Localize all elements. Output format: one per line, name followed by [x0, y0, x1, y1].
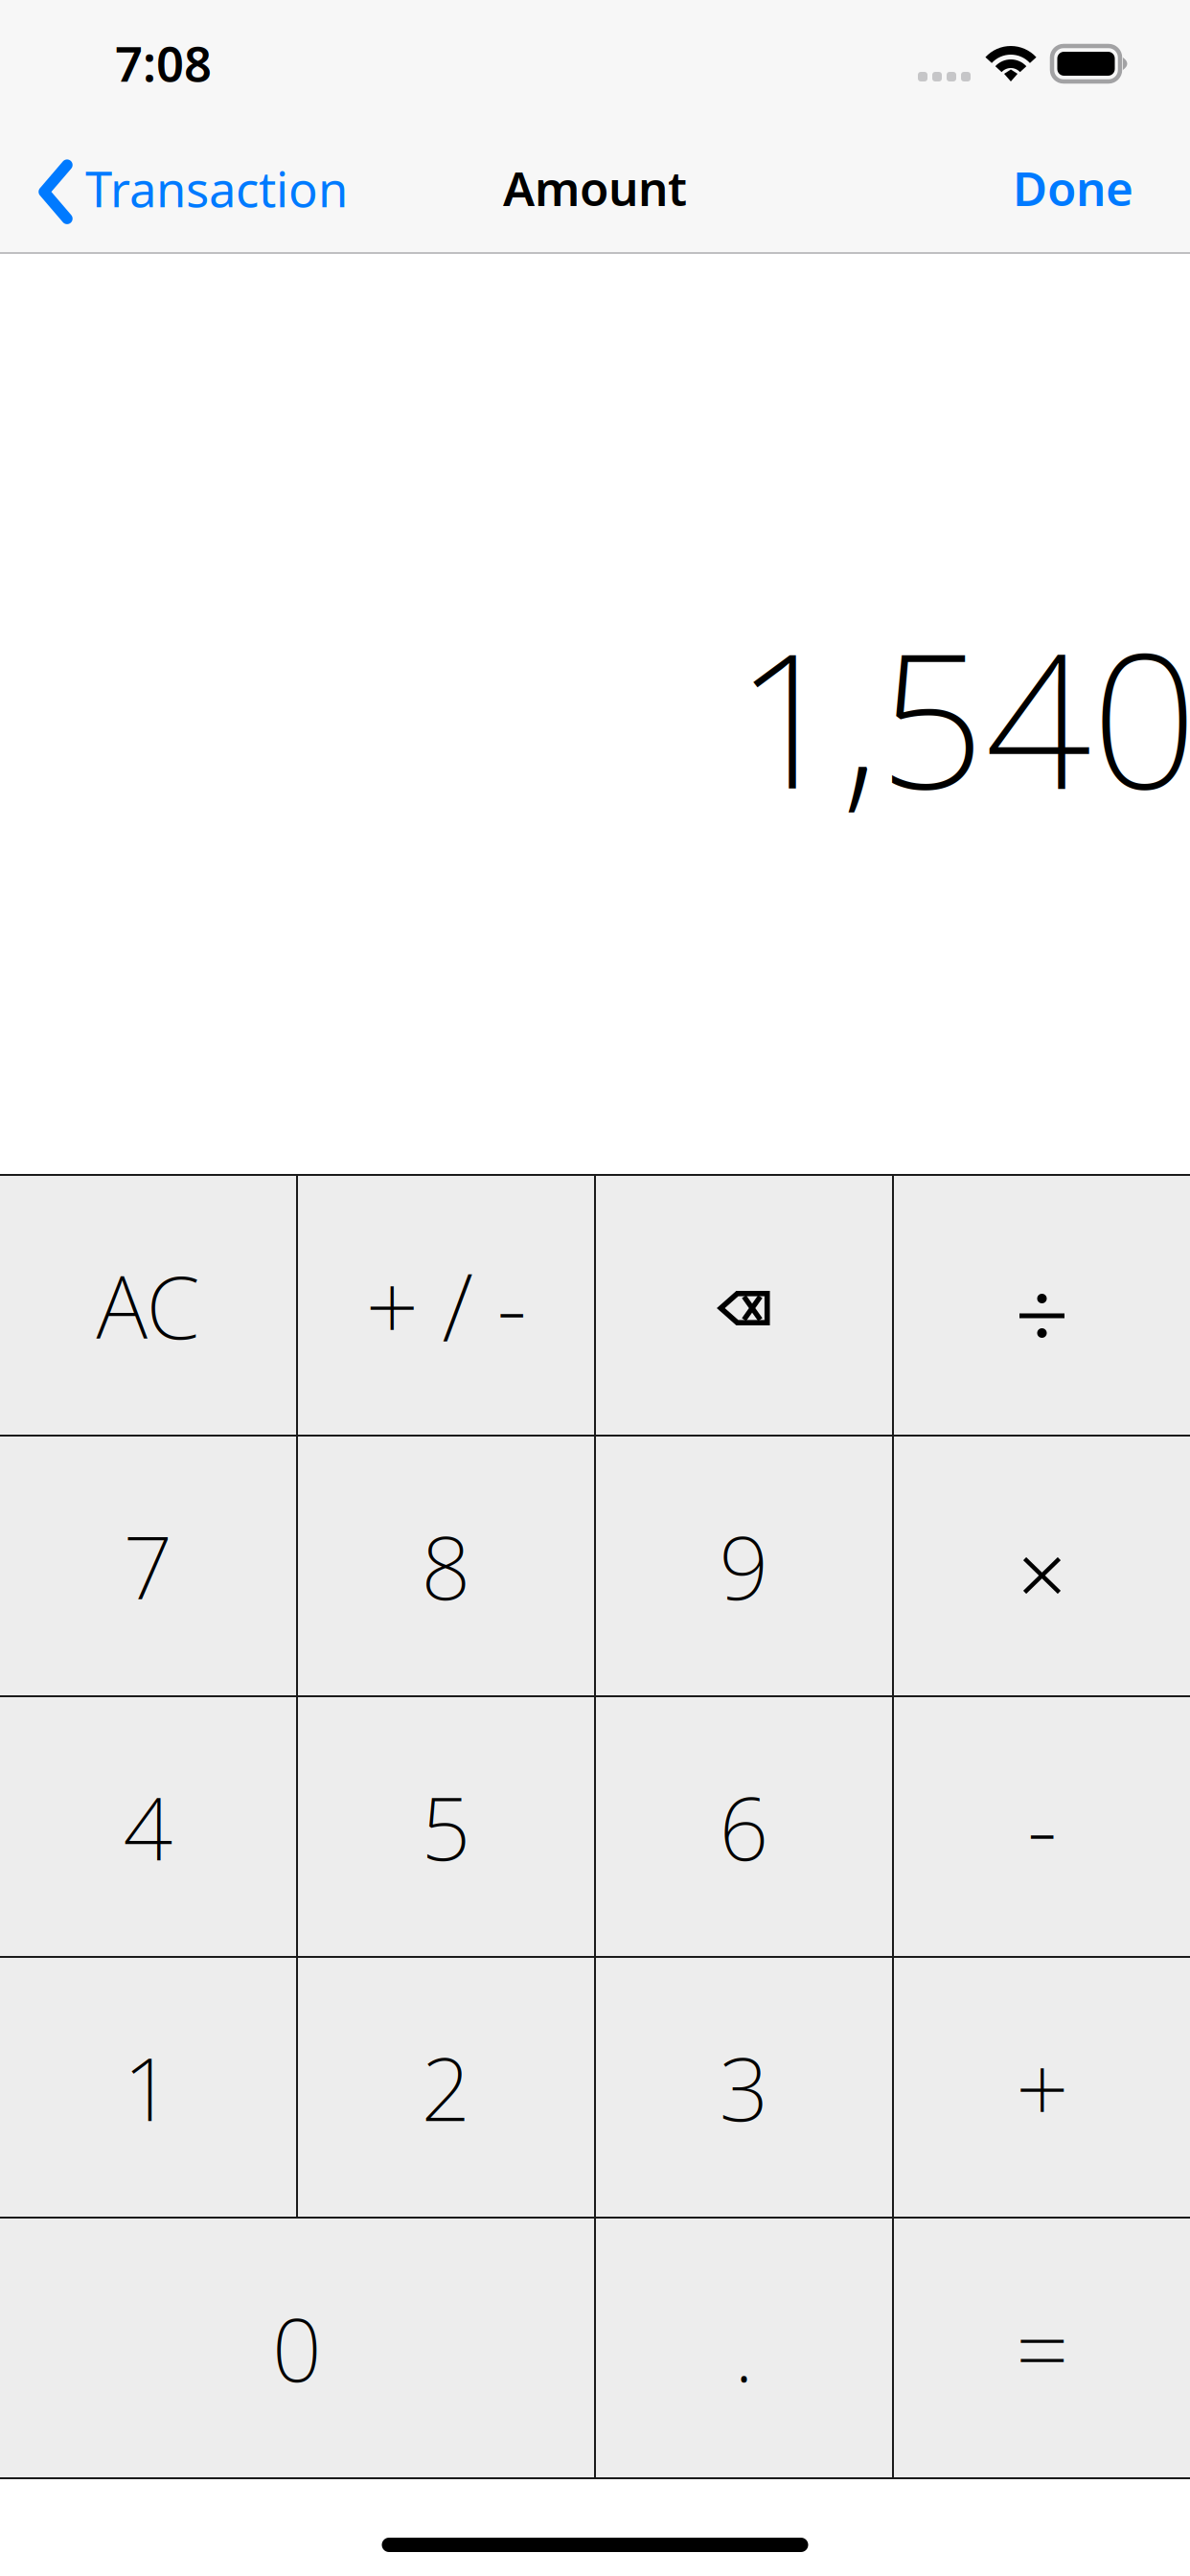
staticText: -: [1027, 1765, 1057, 1889]
staticText: Transaction: [85, 156, 348, 221]
staticText: 3: [719, 2030, 769, 2145]
staticText: 7: [123, 1508, 173, 1624]
staticText: + / -: [366, 1243, 526, 1367]
button[interactable]: All clear: [0, 1176, 296, 1435]
button[interactable]: 9: [596, 1437, 892, 1695]
staticText: Amount: [503, 156, 687, 219]
button[interactable]: Equals: [894, 2219, 1190, 2477]
staticText: 7:08: [115, 31, 212, 95]
button[interactable]: Add: [894, 1958, 1190, 2217]
button[interactable]: Done: [1013, 156, 1133, 219]
button[interactable]: 1: [0, 1958, 296, 2217]
staticText: +: [1016, 2025, 1068, 2149]
staticText: 9: [719, 1508, 769, 1624]
button[interactable]: 0: [0, 2219, 594, 2477]
staticText: =: [1016, 2286, 1068, 2410]
staticText: 1: [123, 2030, 173, 2145]
button[interactable]: Subtract: [894, 1697, 1190, 1956]
button[interactable]: Transaction: [37, 156, 348, 227]
staticText: 5: [421, 1769, 471, 1884]
button[interactable]: Divide: [894, 1176, 1190, 1435]
staticText: 0: [272, 2290, 322, 2406]
button[interactable]: 5: [298, 1697, 594, 1956]
button[interactable]: Delete: [596, 1176, 892, 1435]
button[interactable]: 6: [596, 1697, 892, 1956]
button[interactable]: 4: [0, 1697, 296, 1956]
staticText: 8: [421, 1508, 471, 1624]
button[interactable]: 8: [298, 1437, 594, 1695]
staticText: 6: [719, 1769, 769, 1884]
staticText: Done: [1013, 156, 1133, 219]
staticText: AC: [96, 1248, 200, 1363]
staticText: .: [734, 2290, 754, 2406]
button[interactable]: Toggle sign: [298, 1176, 594, 1435]
staticText: 1,540: [735, 592, 1190, 840]
button[interactable]: 7: [0, 1437, 296, 1695]
staticText: 2: [421, 2030, 471, 2145]
button[interactable]: 3: [596, 1958, 892, 2217]
button[interactable]: Multiply: [894, 1437, 1190, 1695]
staticText: 4: [123, 1769, 173, 1884]
button[interactable]: 2: [298, 1958, 594, 2217]
button[interactable]: Decimal point: [596, 2219, 892, 2477]
